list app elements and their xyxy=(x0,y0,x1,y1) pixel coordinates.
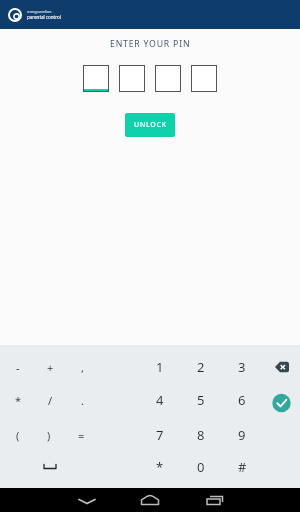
staticText: 3 xyxy=(238,358,246,376)
staticText: 5 xyxy=(197,391,205,409)
staticText: 2 xyxy=(197,358,205,376)
staticText: parental control xyxy=(27,14,61,20)
staticText: , xyxy=(81,360,84,375)
staticText: ) xyxy=(47,428,51,443)
staticText: # xyxy=(238,458,247,476)
staticText: mmguardian xyxy=(27,9,52,14)
staticText: 8 xyxy=(197,426,205,444)
staticText: . xyxy=(81,393,84,408)
staticText: - xyxy=(16,360,20,375)
staticText: * xyxy=(15,393,22,408)
staticText: 6 xyxy=(238,391,246,409)
staticText: / xyxy=(48,393,53,408)
staticText: 7 xyxy=(156,426,164,444)
staticText: 1 xyxy=(156,358,164,376)
staticText: UNLOCK xyxy=(134,120,167,130)
staticText: + xyxy=(47,360,54,375)
staticText: = xyxy=(78,428,85,443)
staticText: 9 xyxy=(238,426,246,444)
staticText: ( xyxy=(16,428,20,443)
staticText: 0 xyxy=(197,458,205,476)
staticText: ENTER YOUR PIN xyxy=(110,38,191,50)
staticText: * xyxy=(156,458,164,476)
staticText: 4 xyxy=(156,391,164,409)
